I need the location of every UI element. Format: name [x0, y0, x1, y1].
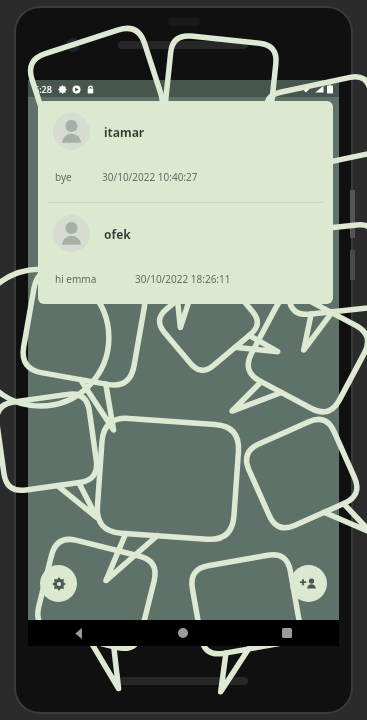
staticText: 6:28 — [34, 83, 52, 95]
button[interactable]: itamar — [38, 101, 333, 202]
button[interactable]: Recents — [235, 620, 339, 646]
staticText: hi emma — [55, 272, 97, 286]
button[interactable]: Home — [131, 620, 235, 646]
staticText: 30/10/2022 10:40:27 — [102, 170, 198, 184]
staticText: 30/10/2022 18:26:11 — [135, 272, 231, 286]
button[interactable]: ofek — [38, 203, 333, 304]
staticText: bye — [55, 170, 72, 184]
button[interactable]: Settings — [40, 565, 77, 602]
staticText: ofek — [104, 226, 131, 242]
button[interactable]: Add contact — [290, 565, 327, 602]
staticText: itamar — [104, 124, 145, 140]
button[interactable]: Back — [28, 620, 131, 646]
